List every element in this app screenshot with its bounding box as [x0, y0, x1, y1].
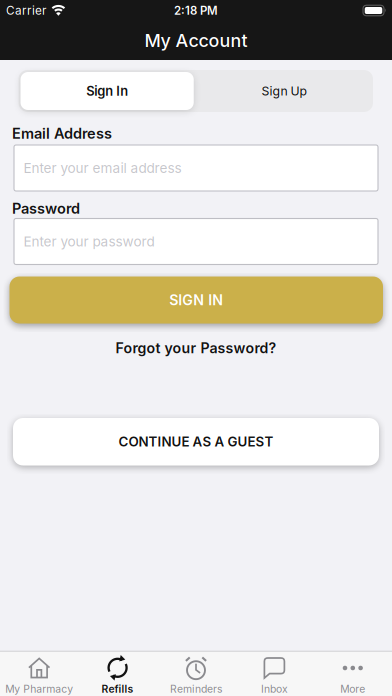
- button[interactable]: Sign In: [18, 70, 196, 112]
- button[interactable]: SIGN IN: [0, 276, 392, 323]
- staticText: Password: [12, 200, 80, 217]
- button[interactable]: Reminders: [157, 655, 235, 694]
- staticText: Enter your email address: [23, 160, 181, 176]
- staticText: Email Address: [12, 125, 112, 142]
- button[interactable]: CONTINUE AS A GUEST: [0, 418, 392, 465]
- button[interactable]: Refills: [78, 655, 157, 694]
- staticText: SIGN IN: [169, 291, 223, 308]
- staticText: More: [340, 683, 365, 695]
- button[interactable]: Inbox: [235, 655, 314, 694]
- staticText: CONTINUE AS A GUEST: [118, 434, 273, 450]
- button[interactable]: My Pharmacy: [0, 655, 78, 694]
- button[interactable]: Sign Up: [196, 70, 373, 112]
- staticText: My Account: [144, 30, 247, 51]
- staticText: Refills: [102, 683, 134, 695]
- staticText: Sign Up: [261, 84, 307, 98]
- button[interactable]: Forgot your Password?: [115, 338, 276, 358]
- button[interactable]: More: [314, 655, 392, 694]
- staticText: Reminders: [170, 683, 222, 695]
- staticText: Carrier: [6, 3, 46, 18]
- button[interactable]: Email Address: [0, 145, 392, 191]
- staticText: Sign In: [86, 83, 128, 99]
- staticText: Enter your password: [23, 233, 154, 250]
- staticText: 2:18 PM: [174, 4, 218, 17]
- button[interactable]: Password: [0, 218, 392, 264]
- staticText: My Pharmacy: [5, 683, 73, 695]
- staticText: Forgot your Password?: [115, 339, 276, 356]
- staticText: Inbox: [261, 683, 288, 695]
